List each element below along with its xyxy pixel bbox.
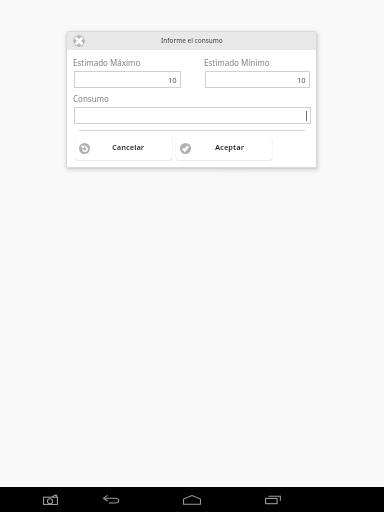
staticText: Estimado Mínimo bbox=[204, 57, 270, 68]
button[interactable]: Home bbox=[164, 487, 220, 512]
staticText: Cancelar bbox=[112, 142, 145, 152]
button[interactable]: Screenshot bbox=[22, 487, 78, 512]
staticText: 10 bbox=[168, 75, 177, 85]
button[interactable]: Cancelar bbox=[75, 137, 172, 160]
staticText: Estimado Máximo bbox=[73, 57, 141, 68]
button[interactable]: Back bbox=[83, 487, 139, 512]
button[interactable]: Cerrar bbox=[73, 35, 85, 47]
staticText: Informe el consumo bbox=[161, 36, 223, 45]
button[interactable]: Aceptar bbox=[176, 137, 272, 160]
staticText: Consumo bbox=[73, 93, 109, 104]
button[interactable]: Recents bbox=[245, 487, 301, 512]
staticText: 10 bbox=[297, 75, 306, 85]
button[interactable]: 10 bbox=[74, 71, 181, 88]
button[interactable]: 10 bbox=[205, 71, 310, 88]
button[interactable] bbox=[74, 107, 311, 124]
staticText: Aceptar bbox=[215, 142, 244, 152]
